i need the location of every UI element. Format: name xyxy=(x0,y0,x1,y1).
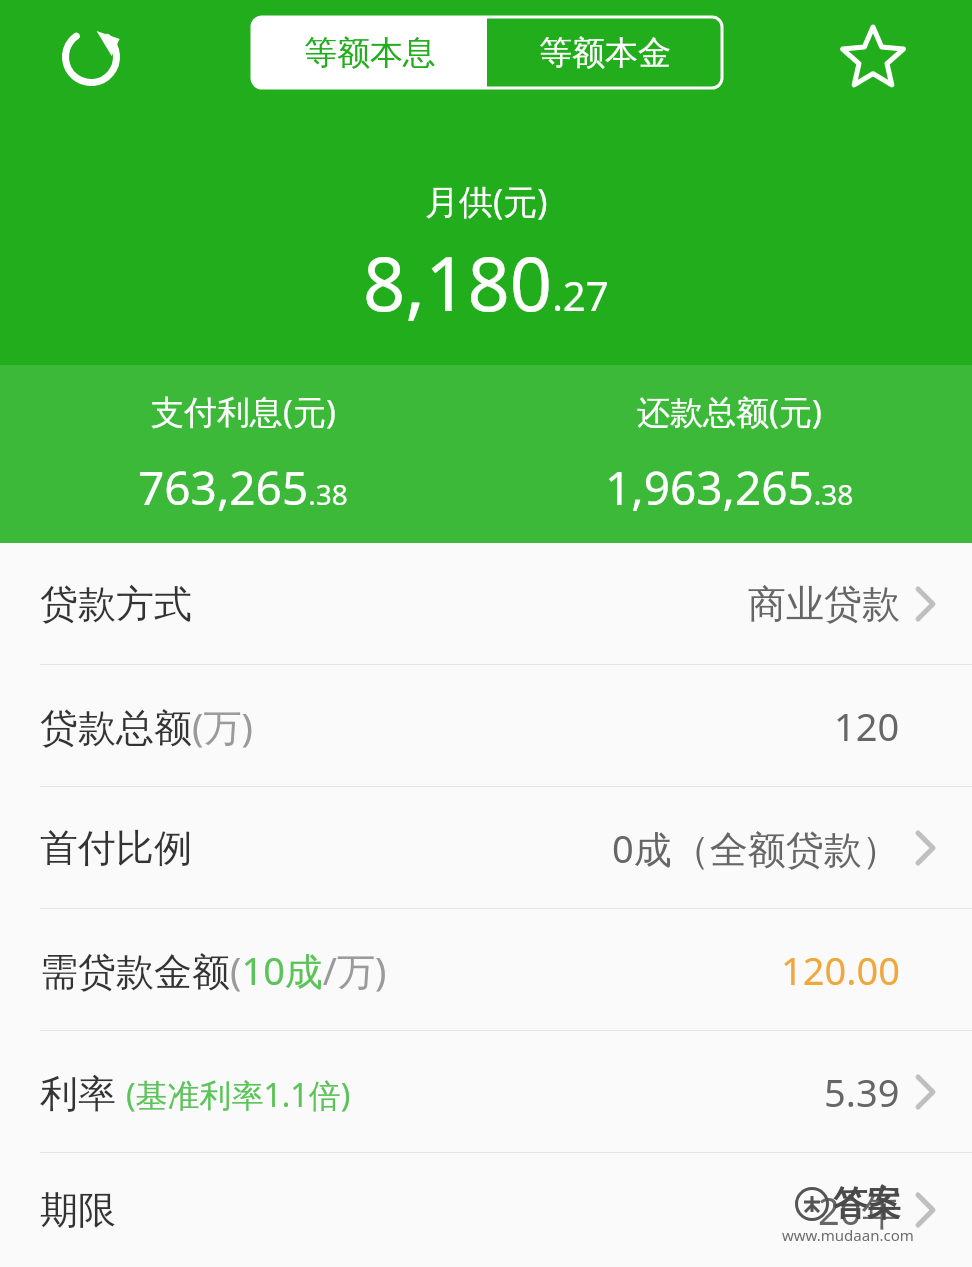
staticText: 0成（全额贷款） xyxy=(612,822,900,874)
button[interactable]: 贷款总额(万) xyxy=(0,665,972,786)
button[interactable]: 首付比例 xyxy=(0,787,972,908)
staticText: 利率 (基准利率1.1倍) xyxy=(40,1066,351,1118)
button[interactable]: 需贷款金额(10成/万) xyxy=(0,909,972,1030)
staticText: 商业贷款 xyxy=(748,580,900,628)
staticText: 8,180.27 xyxy=(363,232,609,333)
staticText: 763,265.38 xyxy=(138,456,348,519)
staticText: 1,963,265.38 xyxy=(605,456,854,519)
staticText: 首付比例 xyxy=(40,824,192,872)
button[interactable]: Favorite xyxy=(832,16,914,98)
staticText: 答案 xyxy=(833,1182,901,1225)
button[interactable]: 期限 xyxy=(0,1153,972,1267)
staticText: 等额本息 xyxy=(304,32,436,74)
staticText: 贷款总额(万) xyxy=(40,700,253,752)
staticText: 120 xyxy=(834,700,900,752)
staticText: 5.39 xyxy=(824,1066,900,1118)
staticText: www.mudaan.com xyxy=(782,1225,914,1245)
button[interactable]: 贷款方式 xyxy=(0,543,972,664)
button[interactable]: 利率 (基准利率1.1倍) xyxy=(0,1031,972,1152)
staticText: 需贷款金额(10成/万) xyxy=(40,944,387,996)
button[interactable]: 等额本息 xyxy=(252,17,487,88)
button[interactable]: 等额本金 xyxy=(487,17,722,88)
staticText: 等额本金 xyxy=(539,32,671,74)
staticText: 支付利息(元) xyxy=(151,389,336,434)
staticText: 20年 xyxy=(818,1184,900,1236)
button[interactable]: Reset xyxy=(52,18,130,96)
staticText: 月供(元) xyxy=(425,178,548,224)
staticText: 贷款方式 xyxy=(40,580,192,628)
staticText: 120.00 xyxy=(781,944,900,996)
staticText: 期限 xyxy=(40,1186,116,1234)
staticText: 还款总额(元) xyxy=(637,389,822,434)
